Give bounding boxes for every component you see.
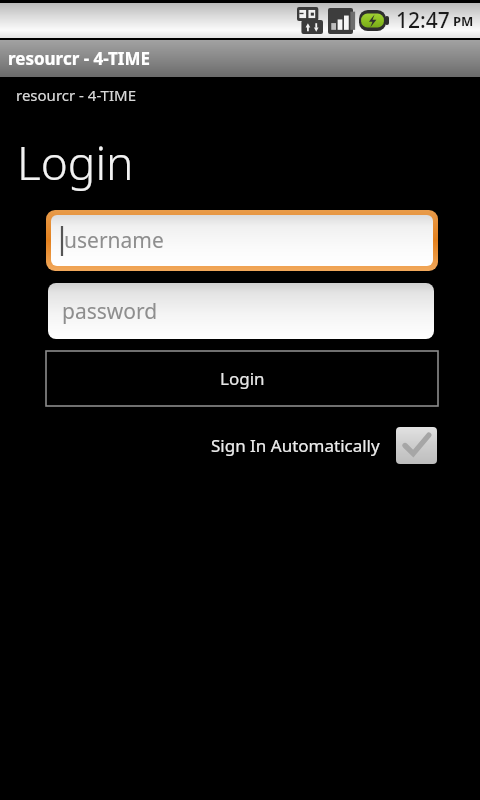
button[interactable]: username: [46, 210, 438, 271]
button[interactable]: Sign In Automatically: [211, 427, 437, 464]
staticText: Login: [17, 131, 134, 194]
staticText: PM: [453, 12, 474, 30]
staticText: Login: [220, 367, 265, 390]
button[interactable]: Login: [46, 351, 438, 406]
button[interactable]: password: [48, 283, 434, 339]
staticText: resourcr - 4-TIME: [16, 85, 136, 105]
staticText: Sign In Automatically: [211, 434, 380, 457]
staticText: resourcr - 4-TIME: [8, 47, 150, 70]
staticText: username: [64, 226, 164, 255]
other: Sign In Automatically checkbox: [396, 427, 437, 464]
staticText: password: [62, 297, 158, 326]
staticText: 12:47: [396, 6, 450, 35]
